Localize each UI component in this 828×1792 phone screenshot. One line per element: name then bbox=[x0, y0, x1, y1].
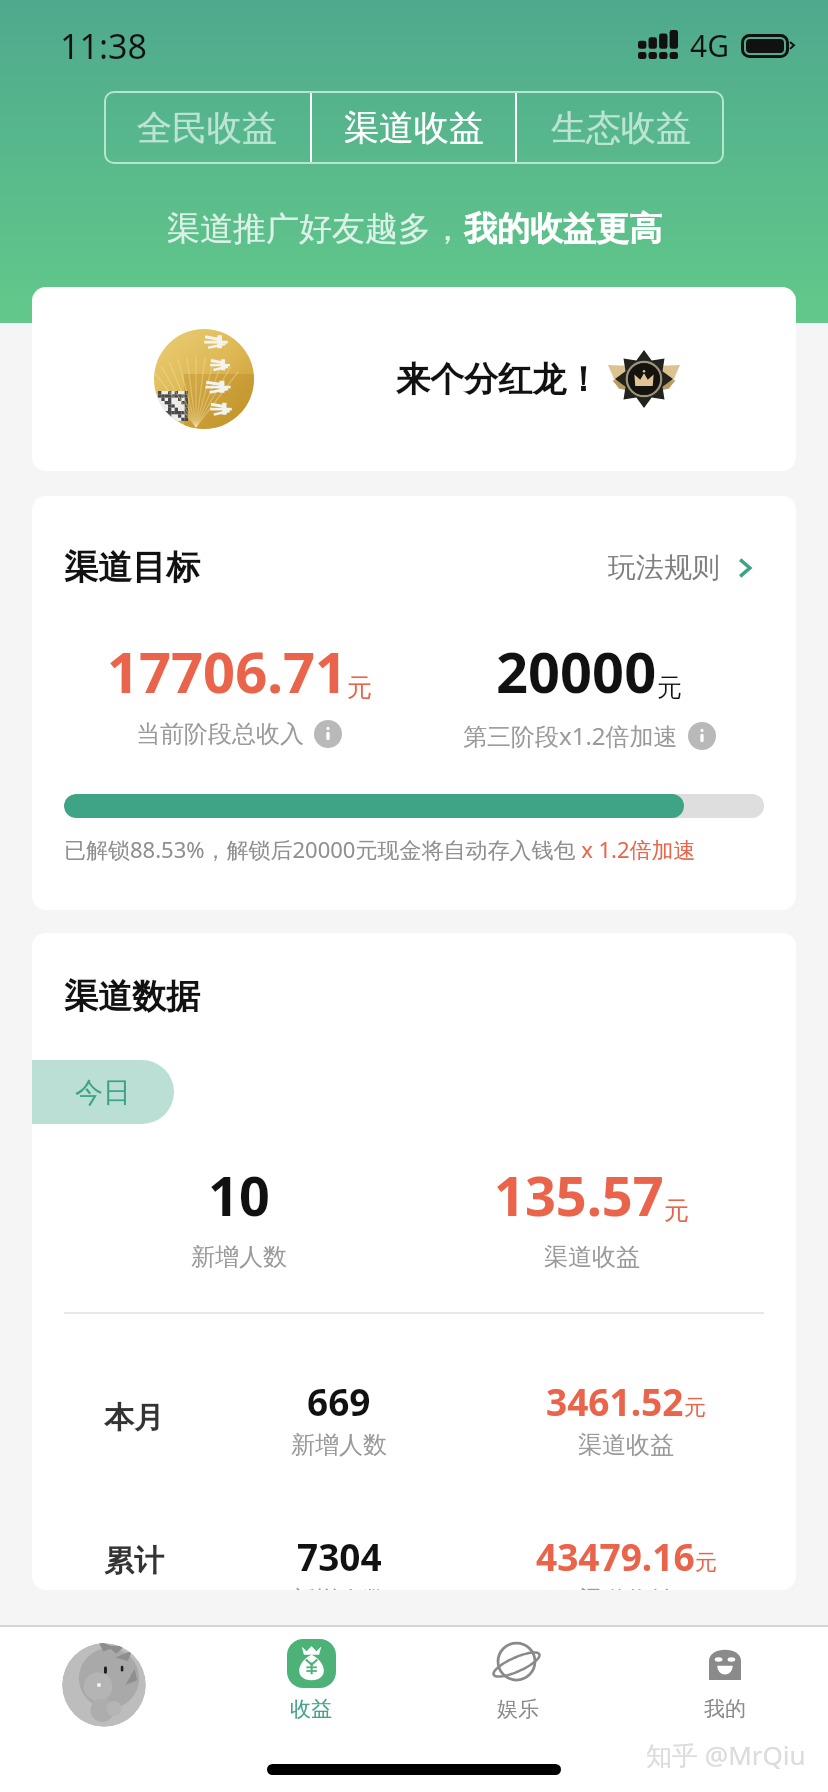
staticText: 收益 bbox=[290, 1696, 332, 1722]
staticText: 20000 bbox=[496, 633, 657, 709]
staticText: 元 bbox=[347, 672, 372, 703]
staticText: 来个分红龙！ bbox=[396, 358, 600, 401]
staticText: 4G bbox=[690, 25, 729, 66]
staticText: 第三阶段x1.2倍加速 bbox=[463, 719, 678, 752]
staticText: 今日 bbox=[75, 1075, 131, 1110]
button[interactable]: 我的 bbox=[621, 1627, 828, 1722]
staticText: 渠道收益 bbox=[578, 1430, 674, 1460]
staticText: 渠道收益 bbox=[544, 1242, 640, 1272]
staticText: 渠道收益 bbox=[344, 106, 484, 150]
button[interactable]: 全民收益 bbox=[104, 91, 310, 164]
staticText: 新增人数 bbox=[291, 1585, 387, 1590]
staticText: 生态收益 bbox=[551, 106, 691, 150]
staticText: 元 bbox=[695, 1549, 717, 1577]
staticText: 新增人数 bbox=[291, 1430, 387, 1460]
button[interactable]: 来个分红龙！ bbox=[32, 287, 796, 471]
staticText: 渠道数据 bbox=[64, 975, 200, 1018]
staticText: 全民收益 bbox=[137, 106, 277, 150]
button[interactable]: 渠道收益 bbox=[310, 91, 517, 164]
staticText: 元 bbox=[664, 1195, 689, 1226]
button[interactable]: 娱乐 bbox=[414, 1627, 621, 1722]
button[interactable]: Profile avatar bbox=[0, 1627, 207, 1727]
staticText: 渠道收益 bbox=[578, 1585, 674, 1590]
staticText: 元 bbox=[657, 672, 682, 703]
staticText: 我的 bbox=[704, 1696, 746, 1722]
staticText: 17706.71 bbox=[107, 633, 347, 709]
staticText: 新增人数 bbox=[191, 1242, 287, 1272]
staticText: 10 bbox=[208, 1158, 270, 1232]
staticText: 知乎 @MrQiu bbox=[646, 1737, 806, 1773]
staticText: 渠道目标 bbox=[64, 546, 200, 589]
staticText: 669 bbox=[307, 1376, 371, 1426]
staticText: 娱乐 bbox=[497, 1696, 539, 1722]
staticText: 3461.52 bbox=[546, 1376, 684, 1426]
button[interactable]: 玩法规则 bbox=[608, 550, 764, 585]
button[interactable]: 今日 bbox=[32, 1060, 174, 1124]
staticText: 11:38 bbox=[60, 23, 147, 69]
staticText: 135.57 bbox=[494, 1158, 664, 1232]
staticText: 7304 bbox=[297, 1531, 382, 1581]
staticText: 元 bbox=[684, 1394, 706, 1422]
staticText: 已解锁88.53%，解锁后20000元现金将自动存入钱包 x 1.2倍加速 bbox=[64, 834, 696, 864]
staticText: 43479.16 bbox=[536, 1531, 695, 1581]
staticText: 渠道推广好友越多，我的收益更高 bbox=[167, 208, 662, 250]
staticText: 玩法规则 bbox=[608, 550, 720, 585]
staticText: 本月 bbox=[104, 1399, 164, 1437]
button[interactable]: 生态收益 bbox=[517, 91, 724, 164]
staticText: 累计 bbox=[104, 1542, 164, 1580]
button[interactable]: 收益 bbox=[207, 1627, 414, 1722]
staticText: 当前阶段总收入 bbox=[136, 719, 304, 749]
